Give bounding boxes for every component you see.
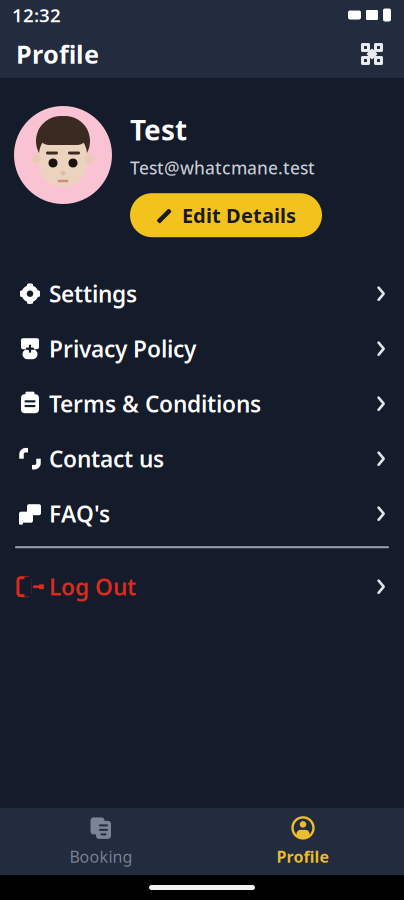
button[interactable]: FAQ's: [0, 486, 404, 541]
staticText: Settings: [49, 279, 137, 309]
staticText: Edit Details: [182, 202, 296, 228]
button[interactable]: Terms & Conditions: [0, 376, 404, 431]
button[interactable]: Settings: [0, 266, 404, 321]
staticText: Test: [130, 111, 187, 148]
staticText: Contact us: [49, 444, 164, 474]
staticText: 12:32: [12, 3, 61, 27]
button[interactable]: Contact us: [0, 431, 404, 486]
button[interactable]: Edit Details: [130, 193, 322, 237]
staticText: Booking: [69, 846, 132, 867]
staticText: Test@whatcmane.test: [130, 156, 315, 179]
button[interactable]: Privacy Policy: [0, 321, 404, 376]
staticText: Terms & Conditions: [49, 389, 261, 419]
staticText: FAQ's: [49, 499, 110, 529]
button[interactable]: Scan QR code: [348, 32, 396, 76]
button[interactable]: Log Out: [0, 559, 404, 614]
button[interactable]: Profile: [202, 810, 404, 872]
staticText: Profile: [276, 846, 329, 867]
staticText: Log Out: [49, 572, 136, 602]
staticText: Privacy Policy: [49, 334, 196, 364]
staticText: Profile: [16, 37, 99, 71]
button[interactable]: Booking: [0, 810, 202, 872]
